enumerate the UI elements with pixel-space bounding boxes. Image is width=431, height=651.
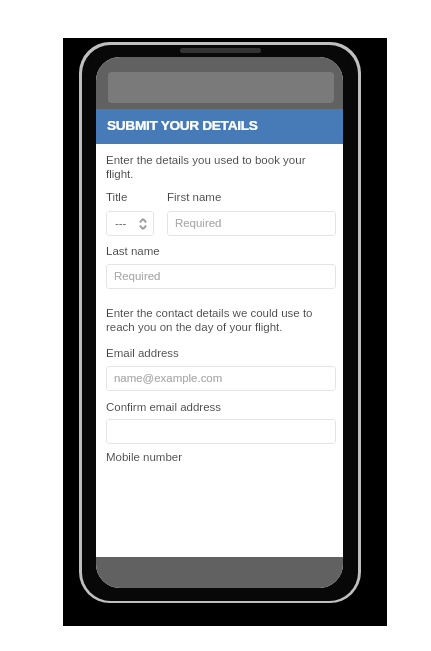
button[interactable]: Required [167,211,336,236]
button[interactable] [106,419,336,444]
staticText: Enter the details you used to book your … [106,154,336,181]
button[interactable]: name@example.com [106,366,336,391]
staticText: Confirm email address [106,401,222,414]
staticText: Required [114,270,161,283]
staticText: Mobile number [106,451,183,464]
staticText: name@example.com [114,372,223,385]
staticText: Required [175,217,222,230]
staticText: First name [167,191,222,204]
button[interactable]: Title [106,211,154,236]
staticText: SUBMIT YOUR DETAILS [107,118,258,133]
button[interactable]: SUBMIT YOUR DETAILS [96,109,343,144]
staticText: Enter the contact details we could use t… [106,307,336,334]
staticText: Last name [106,245,160,258]
staticText: --- [115,217,127,230]
staticText: Title [106,191,128,204]
button[interactable]: Required [106,264,336,289]
button[interactable]: Browser toolbar [96,557,343,588]
staticText: Email address [106,347,179,360]
